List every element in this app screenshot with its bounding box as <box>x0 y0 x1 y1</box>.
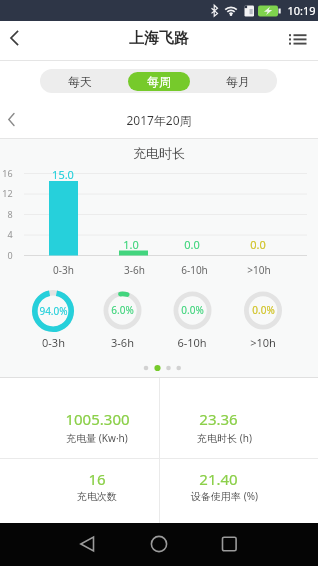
staticText: 2017年20周 <box>126 112 192 128</box>
staticText: 0.0 <box>250 237 266 251</box>
staticText: 4 <box>7 228 13 240</box>
staticText: 10:19 <box>287 3 316 18</box>
staticText: 1005.300 <box>65 409 130 425</box>
staticText: 1.0 <box>123 237 139 251</box>
button[interactable] <box>139 527 179 561</box>
button[interactable] <box>209 527 249 561</box>
staticText: 16 <box>88 469 106 485</box>
staticText: 23.36 <box>199 409 238 425</box>
staticText: 0.0% <box>252 303 275 317</box>
staticText: 充电量 (Kw·h) <box>66 431 128 445</box>
staticText: 6-10h <box>177 335 207 349</box>
staticText: 15.0 <box>52 167 74 181</box>
button[interactable] <box>2 108 24 132</box>
button[interactable] <box>0 459 159 523</box>
staticText: 0-3h <box>42 335 65 349</box>
button[interactable] <box>159 459 318 523</box>
staticText: 21.40 <box>199 469 238 485</box>
staticText: 94.0% <box>39 304 68 318</box>
staticText: 6-10h <box>181 263 208 276</box>
staticText: 3-6h <box>111 335 134 349</box>
staticText: 12 <box>2 187 13 199</box>
staticText: 0-3h <box>53 263 74 276</box>
button[interactable] <box>4 25 30 51</box>
staticText: 0 <box>7 249 13 261</box>
button[interactable]: 每月 <box>198 69 277 93</box>
staticText: >10h <box>247 263 271 276</box>
staticText: 每天 <box>68 74 92 89</box>
staticText: >10h <box>250 335 276 349</box>
staticText: 设备使用率 (%) <box>191 489 258 503</box>
staticText: 0.0% <box>181 303 204 317</box>
button[interactable] <box>159 378 318 458</box>
staticText: 每月 <box>226 74 250 89</box>
button[interactable] <box>284 28 312 52</box>
button[interactable] <box>67 527 107 561</box>
staticText: 16 <box>2 167 13 179</box>
button[interactable]: 每周 <box>119 69 198 93</box>
staticText: 每周 <box>147 74 171 89</box>
staticText: 0.0 <box>184 237 200 251</box>
staticText: 3-6h <box>124 263 145 276</box>
staticText: 8 <box>7 208 13 220</box>
staticText: 6.0% <box>111 303 134 317</box>
staticText: 充电次数 <box>77 490 117 503</box>
staticText: 充电时长 <box>133 145 185 161</box>
button[interactable]: 每天 <box>40 69 119 93</box>
staticText: 充电时长 (h) <box>197 431 252 445</box>
button[interactable] <box>0 378 159 458</box>
staticText: 上海飞路 <box>129 29 189 48</box>
